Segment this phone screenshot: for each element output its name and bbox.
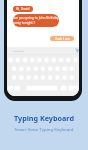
staticText: Smart Voice Typing Keyboard: [0, 126, 88, 132]
button[interactable]: Are you going to John Birthday party ton…: [13, 14, 59, 27]
staticText: Are you going to John Birthday party ton…: [13, 16, 59, 25]
staticText: Typing Keyboard: [0, 113, 88, 123]
staticText: Yeah I am: [55, 37, 70, 41]
button[interactable]: Typing Keyboard: [0, 113, 88, 123]
button[interactable]: Hi, David: [13, 6, 33, 12]
button[interactable]: Yeah I am: [50, 36, 74, 41]
staticText: Hi, David: [16, 7, 30, 11]
